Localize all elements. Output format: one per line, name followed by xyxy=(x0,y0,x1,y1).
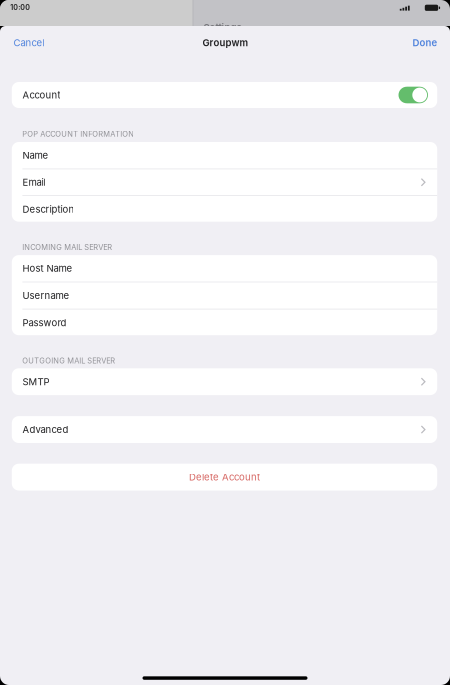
staticText: Password xyxy=(22,317,66,329)
staticText: 10:00 xyxy=(10,3,30,12)
button[interactable]: Email xyxy=(12,169,437,195)
staticText: Settings xyxy=(203,22,241,33)
button[interactable]: Done xyxy=(406,31,443,55)
staticText: POP ACCOUNT INFORMATION xyxy=(22,130,134,139)
staticText: Account xyxy=(22,89,60,101)
staticText: Advanced xyxy=(22,424,68,435)
staticText: Email xyxy=(22,176,45,188)
button[interactable]: Advanced xyxy=(12,416,437,443)
staticText: Name xyxy=(22,149,48,161)
staticText: Done xyxy=(412,37,437,48)
staticText: Cancel xyxy=(13,37,44,48)
button[interactable]: Description xyxy=(12,196,437,222)
button[interactable]: SMTP xyxy=(12,368,437,395)
button[interactable]: Groupwm xyxy=(160,31,290,55)
staticText: SMTP xyxy=(22,376,49,387)
staticText: Delete Account xyxy=(189,471,260,483)
staticText: Groupwm xyxy=(202,37,248,48)
button[interactable]: Account xyxy=(12,82,437,108)
button[interactable]: Cancel xyxy=(7,31,50,55)
button[interactable]: Delete Account xyxy=(12,464,437,490)
button[interactable]: Name xyxy=(12,142,437,168)
staticText: Username xyxy=(22,290,69,301)
staticText: Host Name xyxy=(22,263,72,274)
button[interactable]: Username xyxy=(12,282,437,309)
staticText: INCOMING MAIL SERVER xyxy=(22,243,112,252)
staticText: Description xyxy=(22,203,74,215)
staticText: OUTGOING MAIL SERVER xyxy=(22,356,115,365)
button[interactable]: Host Name xyxy=(12,255,437,282)
button[interactable]: Password xyxy=(12,309,437,336)
